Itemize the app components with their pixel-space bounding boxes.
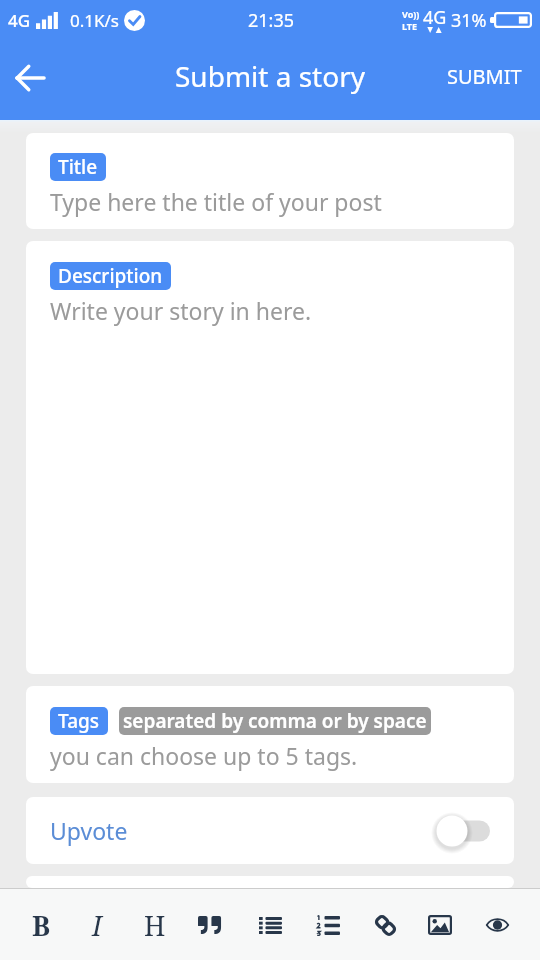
staticText: SUBMIT <box>447 63 522 90</box>
staticText: Description <box>58 263 163 289</box>
staticText: B <box>32 907 51 944</box>
button[interactable]: Quote <box>186 901 234 949</box>
button[interactable]: SUBMIT <box>426 49 540 104</box>
staticText: H <box>144 907 166 944</box>
staticText: Tags <box>58 708 100 734</box>
staticText: Write your story in here. <box>50 295 312 326</box>
staticText: 4G <box>423 5 447 30</box>
button[interactable]: Back <box>2 50 58 106</box>
staticText: LTE <box>402 20 418 32</box>
button[interactable]: Image <box>416 901 464 949</box>
button[interactable]: Upvote toggle <box>424 806 496 856</box>
button[interactable]: Heading <box>131 901 179 949</box>
staticText: 4G <box>8 9 31 32</box>
button[interactable]: Preview <box>473 901 521 949</box>
button[interactable]: Bullet list <box>246 901 294 949</box>
button[interactable]: Bold <box>17 901 65 949</box>
staticText: 21:35 <box>248 8 295 33</box>
staticText: you can choose up to 5 tags. <box>50 740 358 771</box>
staticText: 0.1K/s <box>70 9 119 32</box>
staticText: Upvote <box>50 815 128 846</box>
staticText: Vo)) <box>402 8 420 20</box>
button[interactable]: Numbered list <box>303 901 351 949</box>
staticText: Title <box>58 154 98 180</box>
button[interactable]: Italic <box>73 901 121 949</box>
button[interactable]: Link <box>361 901 409 949</box>
staticText: 31% <box>451 8 487 33</box>
staticText: Type here the title of your post <box>50 186 382 217</box>
staticText: Submit a story <box>175 57 365 95</box>
staticText: I <box>92 907 102 944</box>
staticText: separated by comma or by space <box>123 708 427 734</box>
